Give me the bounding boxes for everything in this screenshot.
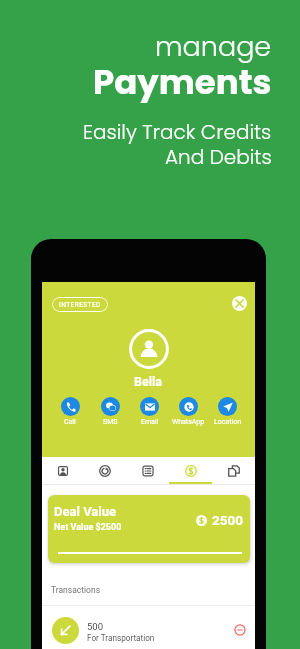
button[interactable]: Notes xyxy=(126,457,169,484)
button[interactable]: Location xyxy=(208,397,247,426)
staticText: Easily Track Credits xyxy=(83,118,272,146)
staticText: SMS xyxy=(103,418,118,426)
button[interactable]: WhatsApp xyxy=(169,397,208,426)
staticText: Email xyxy=(141,418,159,426)
staticText: Bella xyxy=(134,374,163,389)
staticText: 500 xyxy=(87,621,104,632)
staticText: Call xyxy=(64,418,76,426)
button[interactable]: INTERESTED xyxy=(52,297,108,312)
button[interactable]: Call xyxy=(50,397,90,426)
staticText: Net Value $2500 xyxy=(54,522,122,533)
staticText: For Transportation xyxy=(87,633,155,643)
staticText: WhatsApp xyxy=(172,418,205,426)
button[interactable]: Payments xyxy=(169,457,212,484)
staticText: Location xyxy=(214,418,242,426)
button[interactable]: Deal Value xyxy=(48,495,250,563)
button[interactable]: SMS xyxy=(90,397,130,426)
button[interactable]: Contact xyxy=(42,457,84,484)
staticText: INTERESTED xyxy=(59,301,101,309)
staticText: Payments xyxy=(93,58,272,106)
staticText: Deal Value xyxy=(54,504,117,519)
other: Debit xyxy=(234,624,246,636)
button[interactable]: History xyxy=(84,457,126,484)
button[interactable]: Email xyxy=(130,397,169,426)
staticText: And Debits xyxy=(165,143,272,171)
staticText: 2500 xyxy=(212,512,243,528)
button[interactable]: 500 xyxy=(42,606,255,649)
button[interactable]: Close xyxy=(232,296,247,311)
staticText: Transactions xyxy=(51,585,101,595)
staticText: manage xyxy=(155,28,272,66)
button[interactable]: Files xyxy=(212,457,255,484)
